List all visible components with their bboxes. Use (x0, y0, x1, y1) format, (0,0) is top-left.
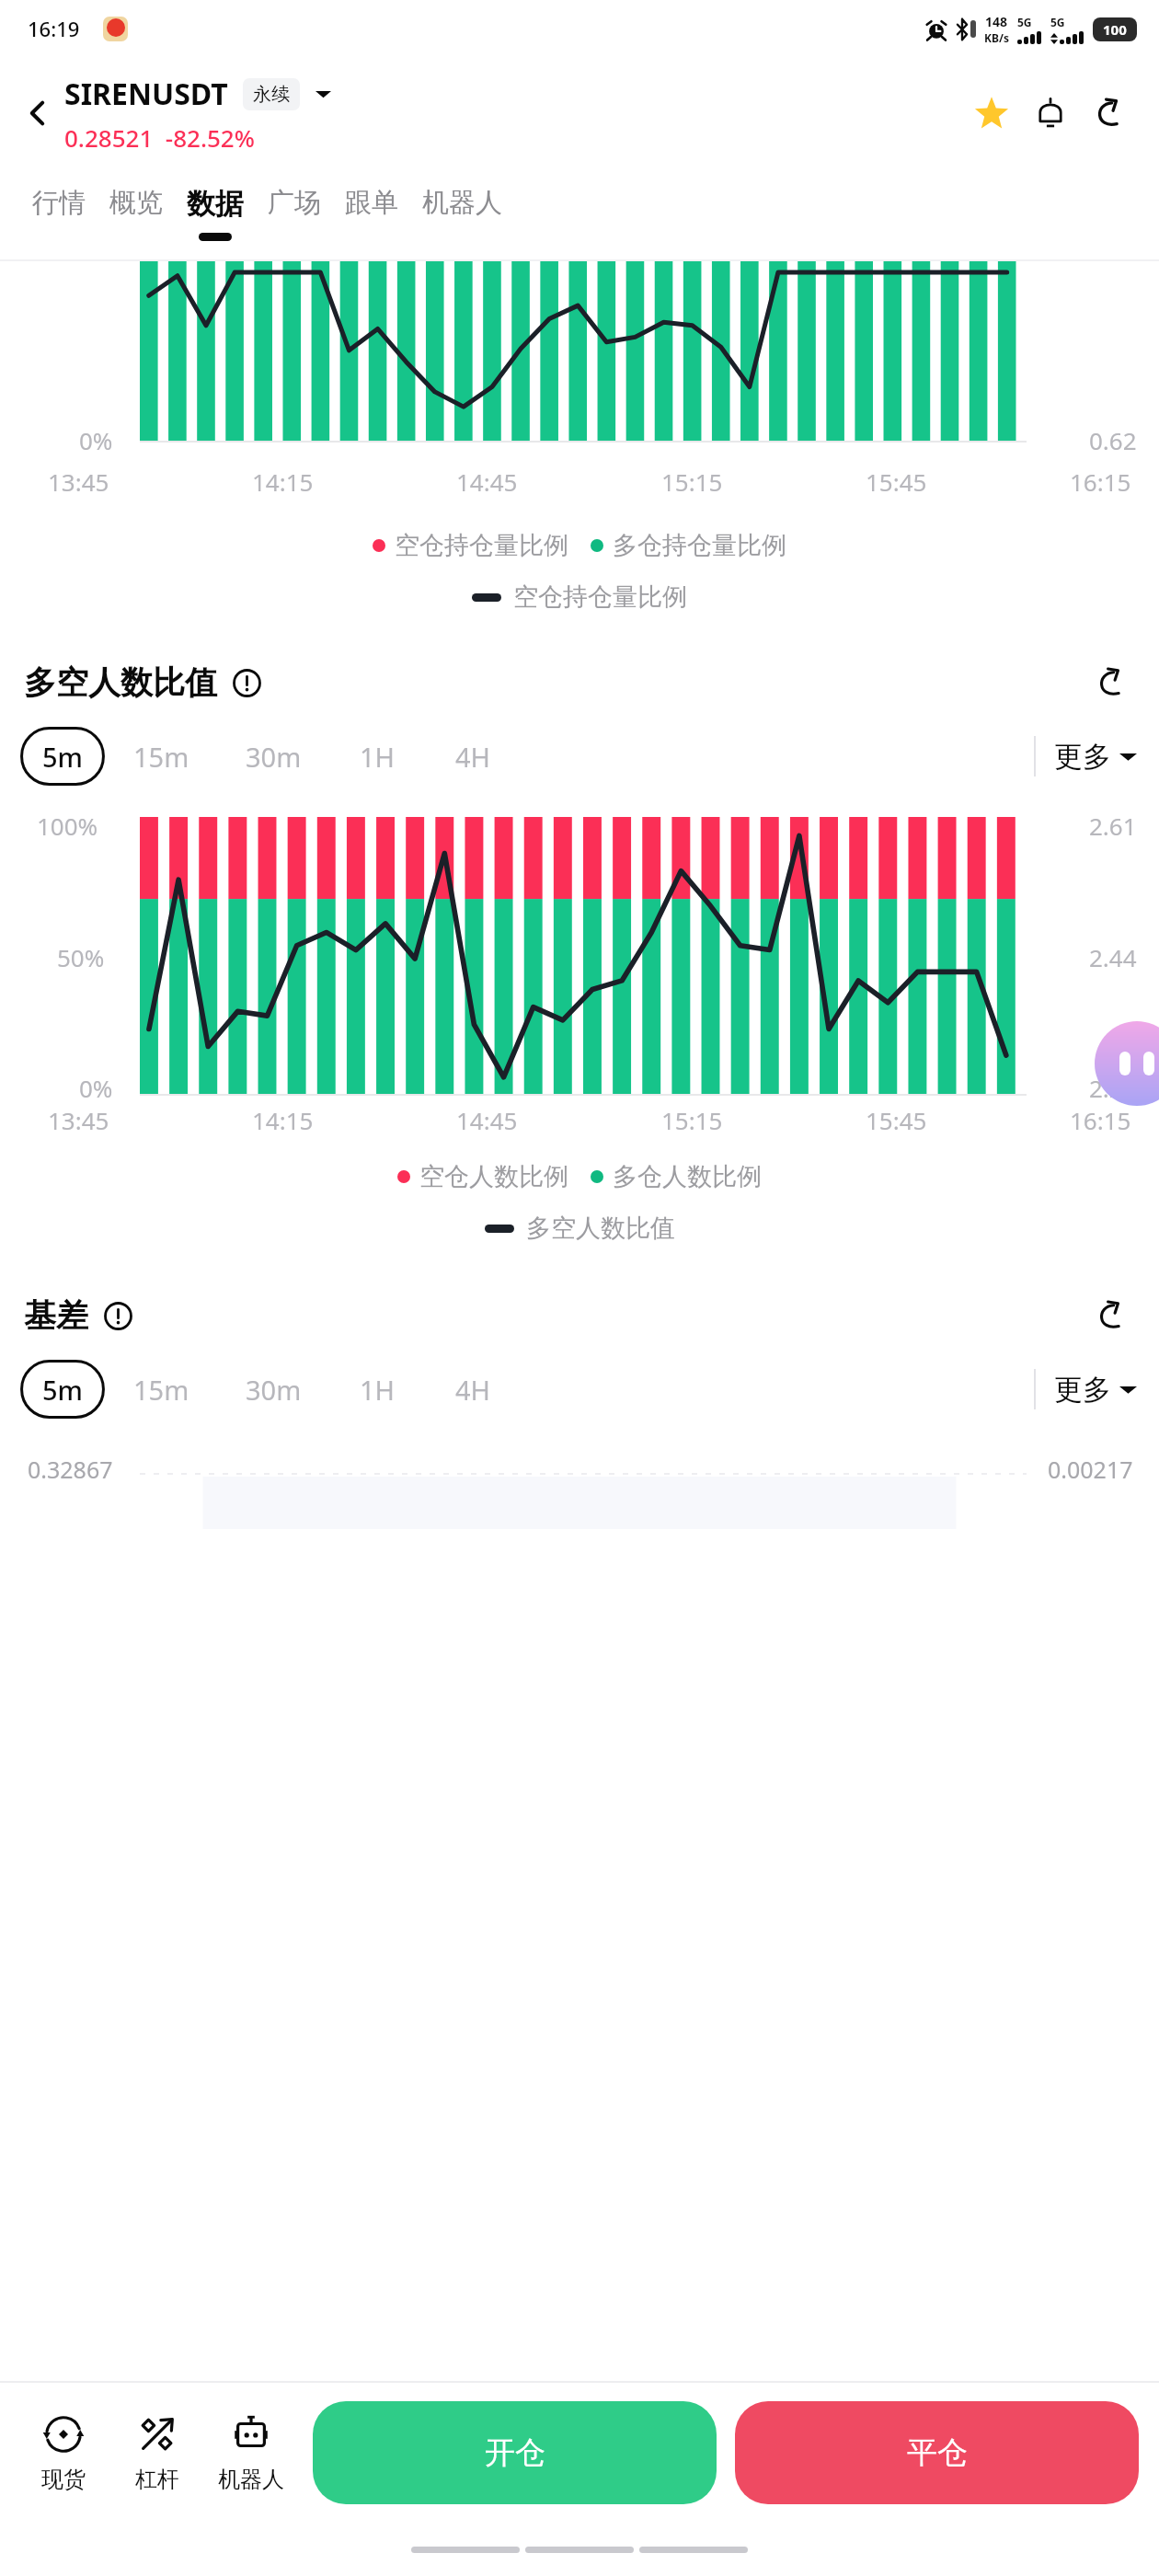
button[interactable]: 价格提醒 (1021, 84, 1080, 143)
button[interactable]: 15m (105, 1360, 217, 1419)
button[interactable]: 更多 (1036, 730, 1139, 784)
staticText: 基差 (24, 1295, 88, 1336)
button[interactable]: 数据 (175, 169, 256, 259)
staticText: 空仓人数比例 (419, 1161, 568, 1192)
staticText: 广场 (268, 186, 321, 220)
staticText: 开仓 (485, 2433, 545, 2472)
staticText: 现货 (41, 2466, 86, 2493)
staticText: 16:15 (1070, 466, 1131, 498)
staticText: 4H (455, 739, 491, 775)
staticText: 2.44 (1089, 941, 1137, 973)
staticText: 5m (42, 739, 84, 775)
staticText: 14:15 (252, 1104, 314, 1136)
button[interactable]: 5m (20, 1360, 105, 1419)
button[interactable]: 切换合约类型 (309, 80, 337, 108)
button[interactable]: 更多 (1036, 1363, 1139, 1417)
staticText: 5G (1017, 15, 1032, 29)
button[interactable]: 永续 (243, 78, 300, 110)
staticText: 13:45 (48, 1104, 109, 1136)
staticText: 机器人 (422, 186, 502, 220)
staticText: 0% (79, 1072, 113, 1104)
staticText: 0.62 (1089, 424, 1137, 456)
staticText: 15:45 (866, 466, 927, 498)
staticText: 15:45 (866, 1104, 927, 1136)
staticText: 0.32867 (28, 1454, 113, 1485)
staticText: 5m (42, 1372, 84, 1408)
staticText: 概览 (109, 186, 163, 220)
button[interactable]: 5m (20, 727, 105, 786)
staticText: 数据 (187, 186, 244, 222)
button[interactable]: 15m (105, 727, 217, 786)
button[interactable]: 平仓 (735, 2401, 1139, 2504)
button[interactable]: 4H (425, 1360, 521, 1419)
staticText: 14:45 (456, 1104, 518, 1136)
staticText: 5G (1050, 15, 1065, 29)
staticText: 15m (133, 1372, 189, 1408)
staticText: 50% (57, 941, 105, 973)
staticText: 空仓持仓量比例 (513, 581, 687, 613)
button[interactable]: 收藏 (962, 84, 1021, 143)
staticText: 100% (37, 810, 98, 842)
staticText: 杠杆 (135, 2466, 179, 2493)
staticText: 13:45 (48, 466, 109, 498)
button[interactable]: 广场 (256, 169, 333, 259)
staticText: 跟单 (345, 186, 398, 220)
button[interactable]: 分享 (1084, 1288, 1139, 1343)
staticText: 1H (360, 1372, 396, 1408)
button[interactable]: 分享 (1080, 84, 1139, 143)
button[interactable]: 机器人 (410, 169, 514, 259)
staticText: 1H (360, 739, 396, 775)
button[interactable]: 杠杆 (110, 2409, 204, 2497)
staticText: 多空人数比值 (526, 1213, 675, 1244)
staticText: 15m (133, 739, 189, 775)
staticText: 16:15 (1070, 1104, 1131, 1136)
staticText: 平仓 (907, 2433, 968, 2472)
staticText: 15:15 (661, 1104, 723, 1136)
staticText: 更多 (1054, 739, 1111, 775)
staticText: 行情 (32, 186, 86, 220)
button[interactable]: 分享 (1084, 655, 1139, 710)
button[interactable]: 1H (329, 727, 425, 786)
staticText: 0.28521 -82.52% (64, 121, 255, 154)
button[interactable]: 智能助手 (1095, 1021, 1159, 1106)
button[interactable]: 行情 (20, 169, 98, 259)
staticText: KB/s (984, 30, 1009, 45)
button[interactable]: 概览 (98, 169, 175, 259)
staticText: 更多 (1054, 1372, 1111, 1408)
button[interactable]: 30m (217, 727, 329, 786)
staticText: 2.61 (1089, 810, 1137, 842)
staticText: 0.00217 (1048, 1454, 1133, 1485)
staticText: 148 (985, 13, 1008, 30)
staticText: 空仓持仓量比例 (395, 530, 568, 561)
staticText: 30m (246, 739, 302, 775)
staticText: 多仓持仓量比例 (613, 530, 786, 561)
staticText: 30m (246, 1372, 302, 1408)
button[interactable]: 机器人 (204, 2409, 298, 2497)
staticText: 100 (1103, 20, 1127, 39)
staticText: 14:15 (252, 466, 314, 498)
staticText: 永续 (253, 83, 290, 106)
button[interactable]: 1H (329, 1360, 425, 1419)
button[interactable]: 指标说明 (228, 664, 265, 701)
staticText: 0% (79, 424, 113, 456)
staticText: 2.28 (1089, 1072, 1137, 1104)
button[interactable]: 现货 (17, 2409, 110, 2497)
staticText: 多仓人数比例 (613, 1161, 762, 1192)
staticText: 机器人 (218, 2466, 284, 2493)
staticText: 多空人数比值 (24, 662, 217, 703)
button[interactable]: 指标说明 (99, 1297, 136, 1334)
staticText: 15:15 (661, 466, 723, 498)
staticText: 4H (455, 1372, 491, 1408)
button[interactable]: 30m (217, 1360, 329, 1419)
button[interactable]: 4H (425, 727, 521, 786)
button[interactable]: 开仓 (313, 2401, 717, 2504)
button[interactable]: 返回 (11, 86, 64, 140)
button[interactable]: 跟单 (333, 169, 410, 259)
staticText: 16:19 (28, 15, 80, 42)
staticText: SIRENUSDT (64, 74, 228, 114)
staticText: 14:45 (456, 466, 518, 498)
